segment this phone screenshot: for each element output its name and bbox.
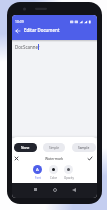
button[interactable]: None xyxy=(14,143,37,152)
button[interactable] xyxy=(64,165,73,174)
staticText: Opacity xyxy=(64,176,74,180)
button[interactable] xyxy=(70,186,77,193)
staticText: Sample xyxy=(78,146,90,150)
button[interactable]: Simple xyxy=(43,143,65,152)
button[interactable] xyxy=(13,155,20,162)
staticText: Watermark xyxy=(45,156,64,161)
button[interactable]: Sample xyxy=(72,143,96,152)
staticText: DocScanner xyxy=(15,44,40,50)
staticText: Color xyxy=(50,176,58,180)
button[interactable]: A xyxy=(33,165,42,174)
button[interactable] xyxy=(86,155,93,162)
staticText: A xyxy=(36,167,39,173)
staticText: Font xyxy=(35,176,41,180)
button[interactable] xyxy=(51,186,58,193)
staticText: 10:09 xyxy=(15,19,24,24)
button[interactable] xyxy=(13,26,22,35)
staticText: Simple xyxy=(49,146,60,150)
staticText: None xyxy=(21,146,30,150)
button[interactable] xyxy=(49,165,58,174)
staticText: Editar Document xyxy=(24,27,60,33)
button[interactable] xyxy=(32,186,39,193)
